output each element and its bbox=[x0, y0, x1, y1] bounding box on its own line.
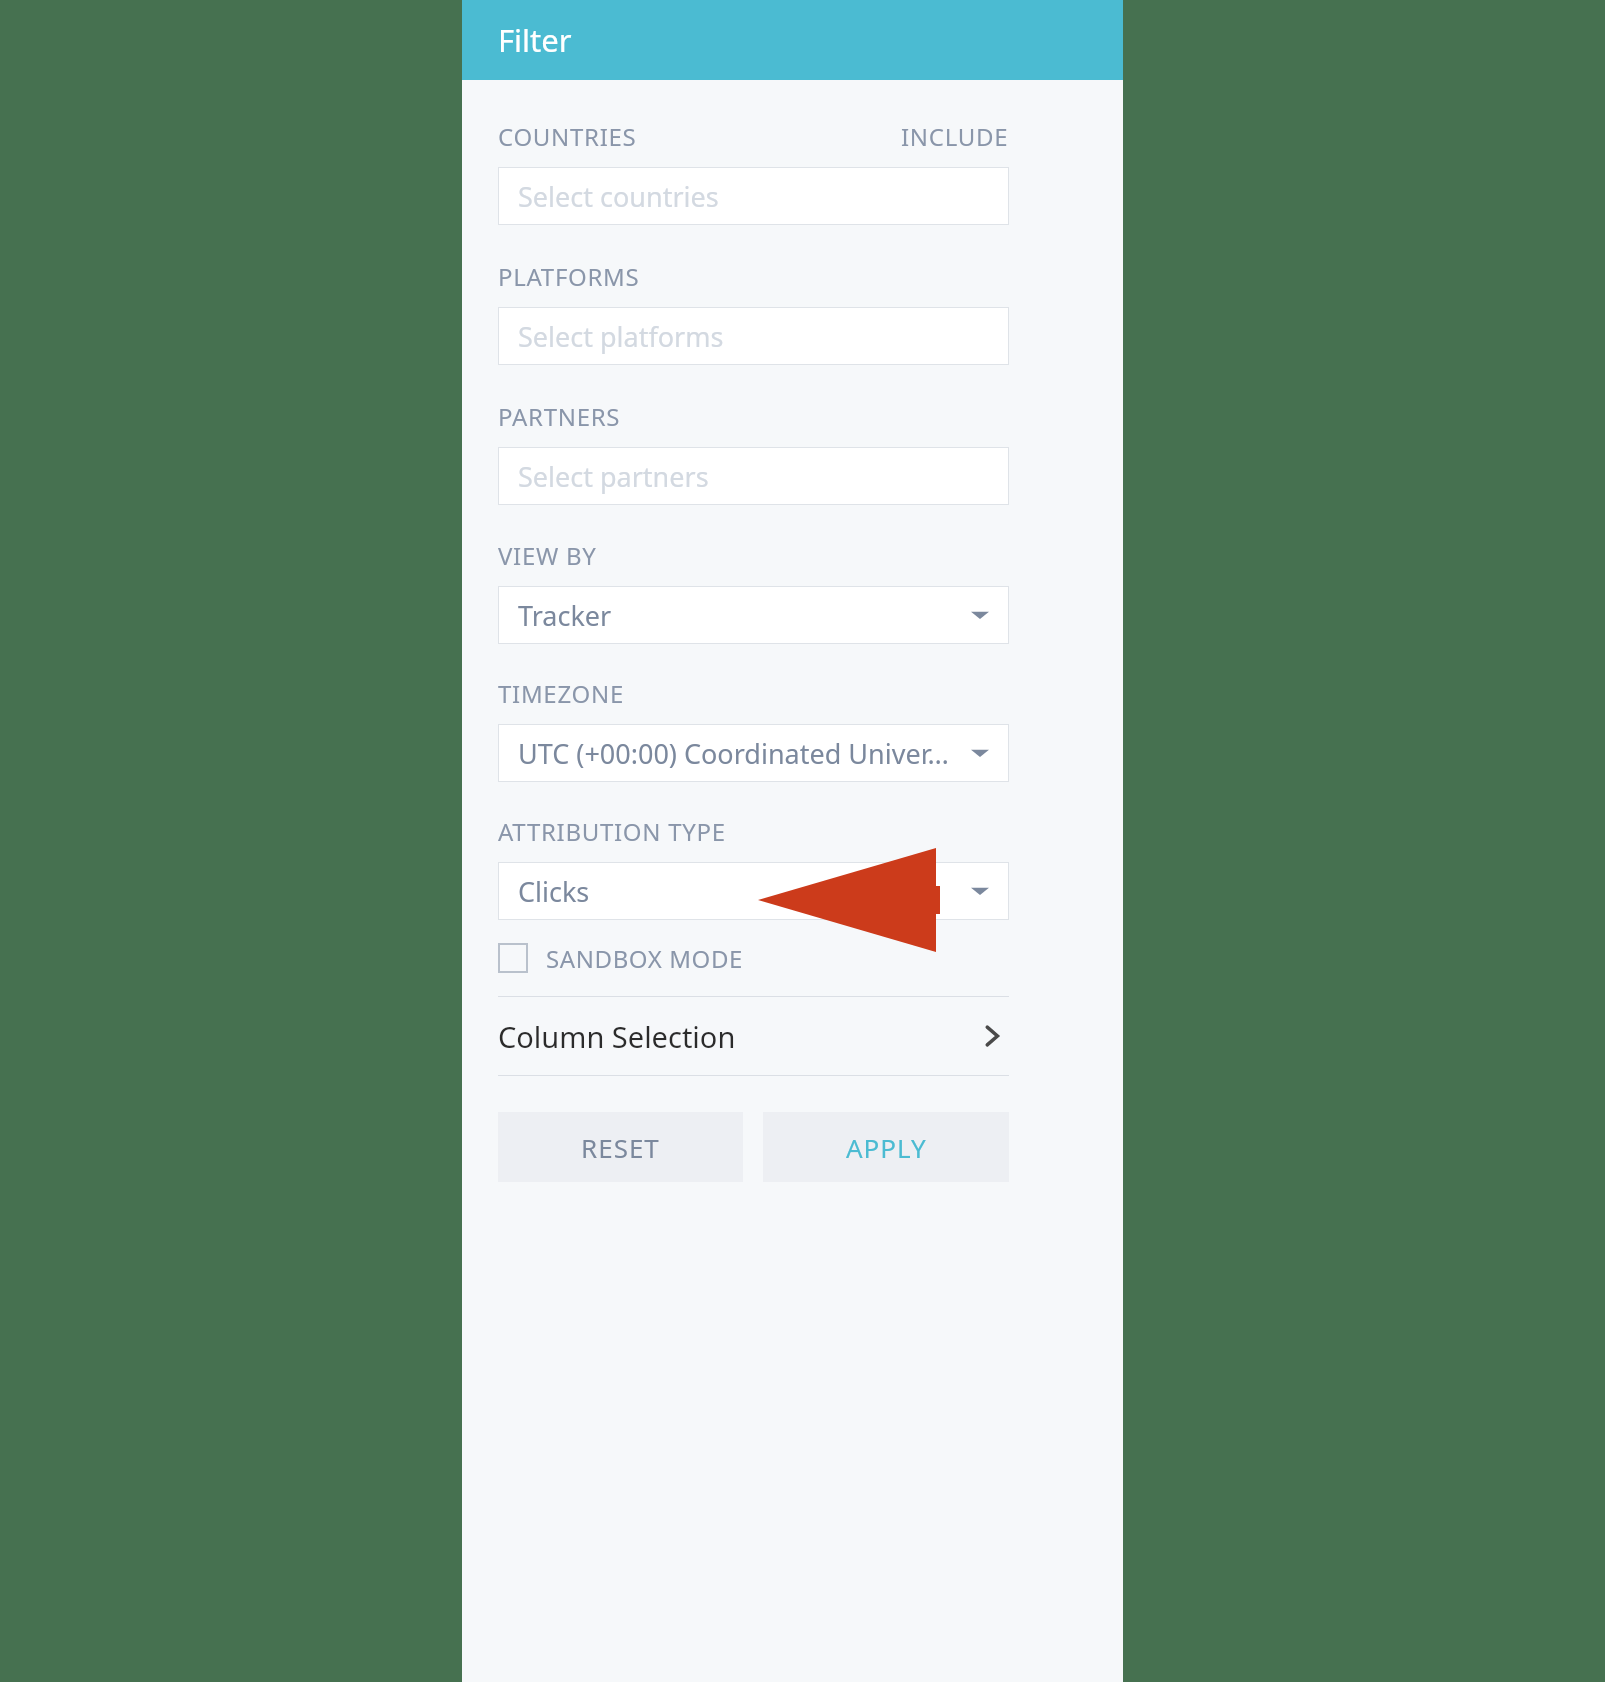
staticText: COUNTRIES bbox=[498, 120, 637, 153]
staticText: APPLY bbox=[846, 1130, 927, 1165]
button[interactable]: Select platforms bbox=[498, 307, 1009, 365]
button[interactable]: Select countries bbox=[498, 167, 1009, 225]
button[interactable]: Column Selection bbox=[498, 997, 1009, 1075]
button[interactable]: SANDBOX MODE bbox=[498, 920, 1009, 996]
staticText: Select partners bbox=[518, 458, 709, 495]
button[interactable]: Clicks bbox=[498, 862, 1009, 920]
staticText: Tracker bbox=[518, 597, 612, 634]
staticText: PARTNERS bbox=[498, 400, 621, 433]
staticText: TIMEZONE bbox=[498, 677, 625, 710]
button[interactable]: RESET bbox=[498, 1112, 743, 1182]
staticText: ATTRIBUTION TYPE bbox=[498, 815, 726, 848]
other: Open column selection bbox=[975, 1019, 1009, 1053]
button[interactable]: Filter bbox=[462, 0, 1123, 80]
staticText: UTC (+00:00) Coordinated Univer… bbox=[518, 735, 949, 772]
staticText: Select countries bbox=[518, 178, 719, 215]
button[interactable]: Select partners bbox=[498, 447, 1009, 505]
button[interactable]: APPLY bbox=[763, 1112, 1009, 1182]
staticText: VIEW BY bbox=[498, 539, 597, 572]
staticText: INCLUDE bbox=[901, 120, 1009, 153]
staticText: Clicks bbox=[518, 873, 590, 910]
staticText: PLATFORMS bbox=[498, 260, 640, 293]
button[interactable]: UTC (+00:00) Coordinated Univer… bbox=[498, 724, 1009, 782]
button[interactable]: Tracker bbox=[498, 586, 1009, 644]
staticText: Select platforms bbox=[518, 318, 724, 355]
staticText: Filter bbox=[498, 19, 572, 61]
staticText: SANDBOX MODE bbox=[546, 942, 744, 975]
staticText: Column Selection bbox=[498, 1017, 736, 1056]
staticText: RESET bbox=[581, 1130, 660, 1165]
